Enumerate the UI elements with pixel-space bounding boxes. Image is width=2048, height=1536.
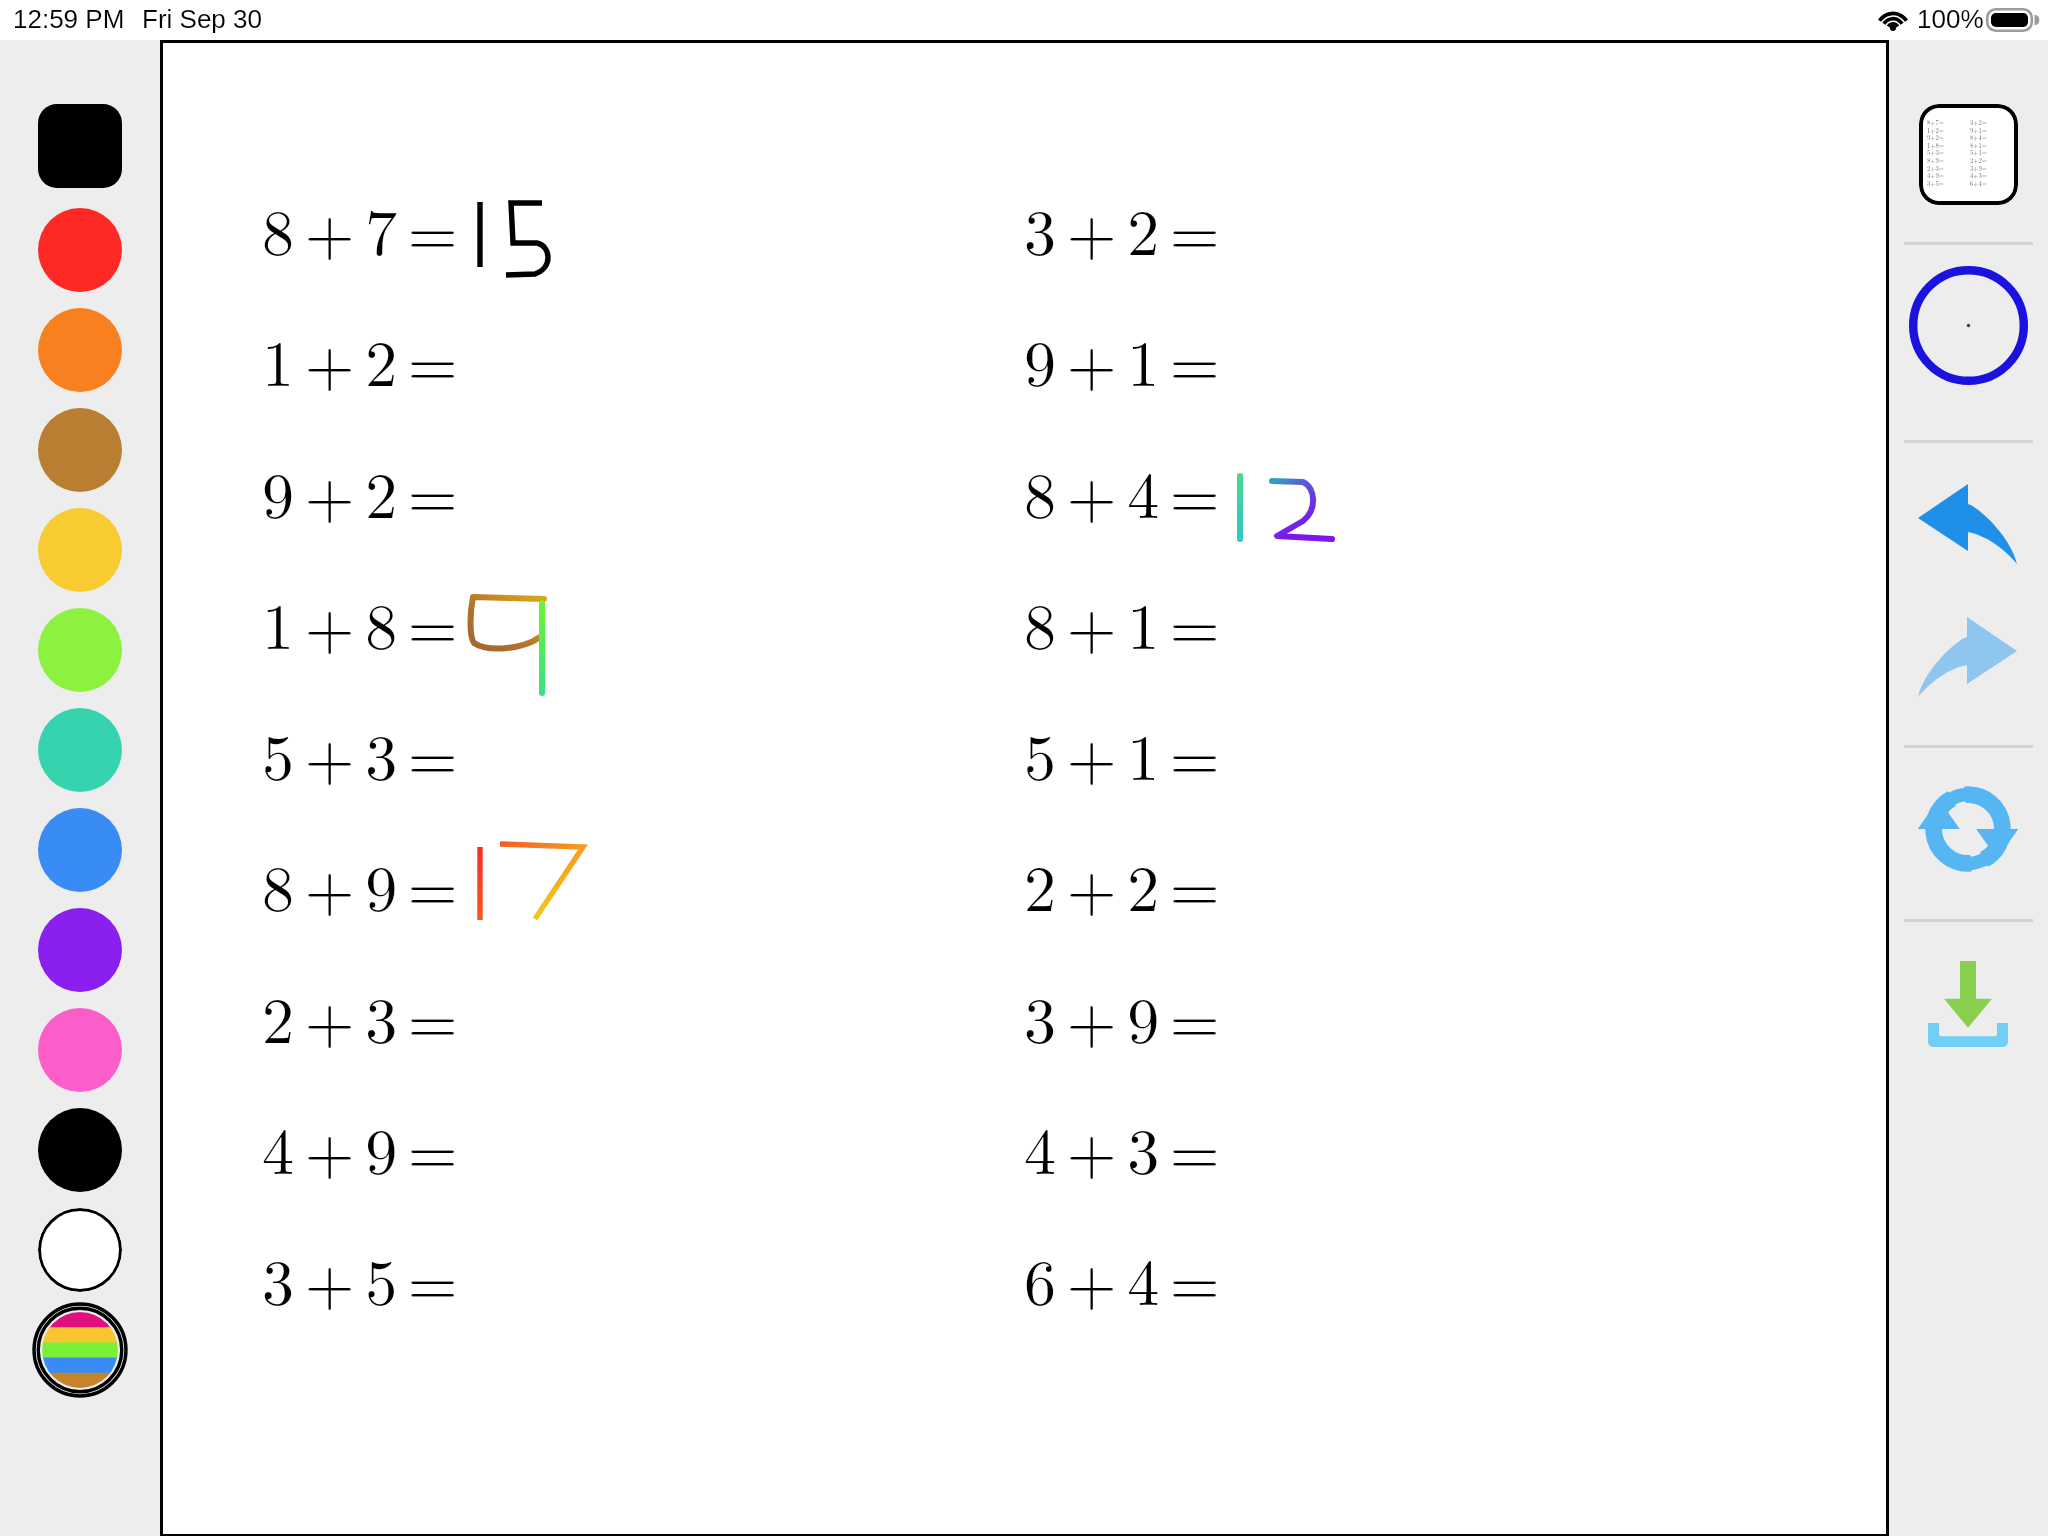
staticText: 2+2=	[1970, 156, 1987, 165]
button[interactable]: Colour swatch	[38, 1008, 122, 1092]
button[interactable]: Colour swatch	[38, 208, 122, 292]
staticText: 5 + 1 =	[1024, 708, 1220, 799]
staticText: 9 + 2 =	[262, 446, 458, 537]
staticText: 2+3=	[1927, 164, 1944, 173]
button[interactable]: Colour swatch	[38, 1108, 122, 1192]
button[interactable]: Rainbow colour	[32, 1302, 128, 1398]
staticText: 12:59 PM	[13, 4, 125, 33]
staticText: 4 + 9 =	[262, 1102, 458, 1193]
button[interactable]: Colour swatch	[38, 708, 122, 792]
staticText: 3 + 5 =	[262, 1233, 458, 1324]
staticText: 8+1=	[1970, 141, 1987, 150]
staticText: 1 + 8 =	[262, 577, 458, 668]
other: Battery 100 percent	[1986, 8, 2041, 32]
staticText: 4+3=	[1970, 171, 1987, 180]
staticText: 9+1=	[1970, 126, 1987, 135]
staticText: 8+7=	[1927, 118, 1944, 127]
staticText: 3 + 9 =	[1024, 971, 1220, 1062]
staticText: 100%	[1917, 4, 1984, 33]
staticText: 5 + 3 =	[262, 708, 458, 799]
other: Wi-Fi	[1878, 8, 1908, 30]
staticText: 9 + 1 =	[1024, 314, 1220, 405]
staticText: 8 + 7 =	[262, 183, 458, 274]
staticText: 4+9=	[1927, 171, 1944, 180]
button[interactable]: Page thumbnail	[1919, 104, 2018, 205]
button[interactable]: Redo	[1918, 617, 2017, 697]
button[interactable]: Colour swatch	[38, 908, 122, 992]
button[interactable]: Colour swatch	[38, 808, 122, 892]
staticText: 3+9=	[1970, 164, 1987, 173]
button[interactable]: Colour swatch	[38, 608, 122, 692]
button[interactable]: Pen tool	[38, 104, 122, 188]
staticText: 3+2=	[1970, 118, 1987, 127]
staticText: 8+9=	[1927, 156, 1944, 165]
button[interactable]: Brush size	[1909, 266, 2028, 385]
staticText: 2 + 2 =	[1024, 839, 1220, 930]
staticText: 9+2=	[1927, 133, 1944, 142]
staticText: 8 + 4 =	[1024, 446, 1220, 537]
staticText: 5+1=	[1970, 148, 1987, 157]
staticText: 1+8=	[1927, 141, 1944, 150]
staticText: 5+3=	[1927, 148, 1944, 157]
staticText: 8 + 1 =	[1024, 577, 1220, 668]
button[interactable]: Save to device	[1928, 961, 2008, 1047]
staticText: 8+4=	[1970, 133, 1987, 142]
staticText: 1 + 2 =	[262, 314, 458, 405]
button[interactable]: White colour	[38, 1208, 122, 1292]
button[interactable]: Colour swatch	[38, 308, 122, 392]
staticText: 6 + 4 =	[1024, 1233, 1220, 1324]
staticText: 2 + 3 =	[262, 971, 458, 1062]
button[interactable]: Colour swatch	[38, 408, 122, 492]
staticText: 1+2=	[1927, 126, 1944, 135]
staticText: 8 + 9 =	[262, 839, 458, 930]
staticText: Fri Sep 30	[142, 4, 262, 33]
staticText: 6+4=	[1970, 179, 1987, 188]
staticText: 3 + 2 =	[1024, 183, 1220, 274]
staticText: 4 + 3 =	[1024, 1102, 1220, 1193]
button[interactable]: Reset page	[1918, 786, 2018, 872]
button[interactable]: Colour swatch	[38, 508, 122, 592]
staticText: 3+5=	[1927, 179, 1944, 188]
button[interactable]: Undo	[1918, 484, 2017, 564]
